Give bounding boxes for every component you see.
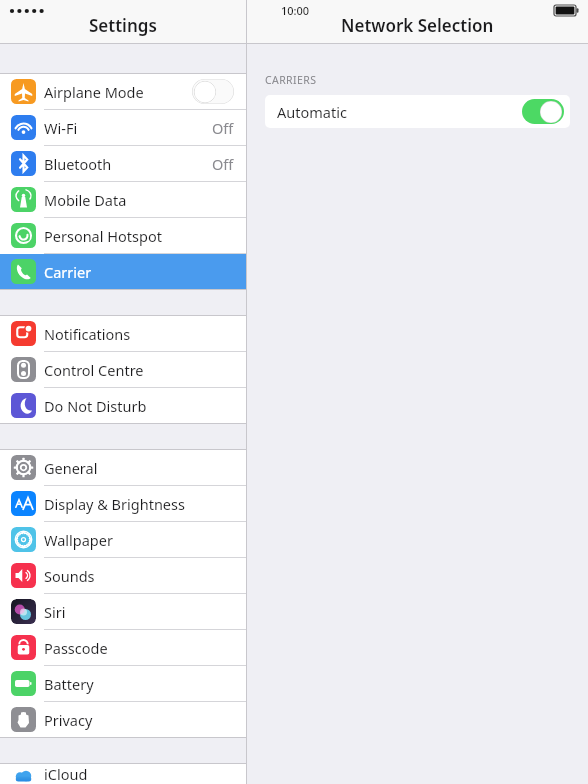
staticText: CARRIERS [265, 73, 317, 87]
staticText: Off [212, 118, 234, 138]
button[interactable]: Sounds [0, 558, 246, 593]
staticText: Bluetooth [44, 154, 112, 174]
button[interactable]: Privacy [0, 702, 246, 737]
button[interactable]: Wallpaper [0, 522, 246, 557]
staticText: Privacy [44, 710, 93, 730]
button[interactable]: Control Centre [0, 352, 246, 387]
button[interactable]: Airplane Mode [0, 74, 246, 109]
staticText: Siri [44, 602, 66, 622]
staticText: Do Not Disturb [44, 396, 147, 416]
staticText: Notifications [44, 324, 131, 344]
staticText: General [44, 458, 98, 478]
button[interactable]: Passcode [0, 630, 246, 665]
staticText: Wi-Fi [44, 118, 78, 138]
staticText: iCloud [44, 764, 88, 784]
button[interactable]: Carrier [0, 254, 246, 289]
button[interactable]: Display & Brightness [0, 486, 246, 521]
button[interactable]: Mobile Data [0, 182, 246, 217]
button[interactable]: Toggle on [522, 99, 564, 124]
button[interactable]: Battery [0, 666, 246, 701]
staticText: Carrier [44, 262, 92, 282]
staticText: Personal Hotspot [44, 226, 162, 246]
staticText: Mobile Data [44, 190, 127, 210]
staticText: Settings [89, 14, 157, 37]
staticText: Sounds [44, 566, 95, 586]
staticText: Airplane Mode [44, 82, 144, 102]
button[interactable]: General [0, 450, 246, 485]
button[interactable]: iCloud [0, 764, 246, 784]
staticText: Passcode [44, 638, 108, 658]
button[interactable]: Automatic [265, 95, 570, 128]
staticText: Control Centre [44, 360, 144, 380]
staticText: Automatic [277, 102, 347, 122]
staticText: Display & Brightness [44, 494, 185, 514]
staticText: Network Selection [341, 14, 494, 37]
button[interactable]: Personal Hotspot [0, 218, 246, 253]
staticText: Off [212, 154, 234, 174]
staticText: Wallpaper [44, 530, 113, 550]
button[interactable]: Bluetooth [0, 146, 246, 181]
button[interactable]: Wi-Fi [0, 110, 246, 145]
button[interactable]: Siri [0, 594, 246, 629]
staticText: 10:00 [281, 3, 310, 18]
button[interactable]: Do Not Disturb [0, 388, 246, 423]
button[interactable]: Toggle off [192, 79, 234, 104]
staticText: Battery [44, 674, 94, 694]
button[interactable]: Notifications [0, 316, 246, 351]
